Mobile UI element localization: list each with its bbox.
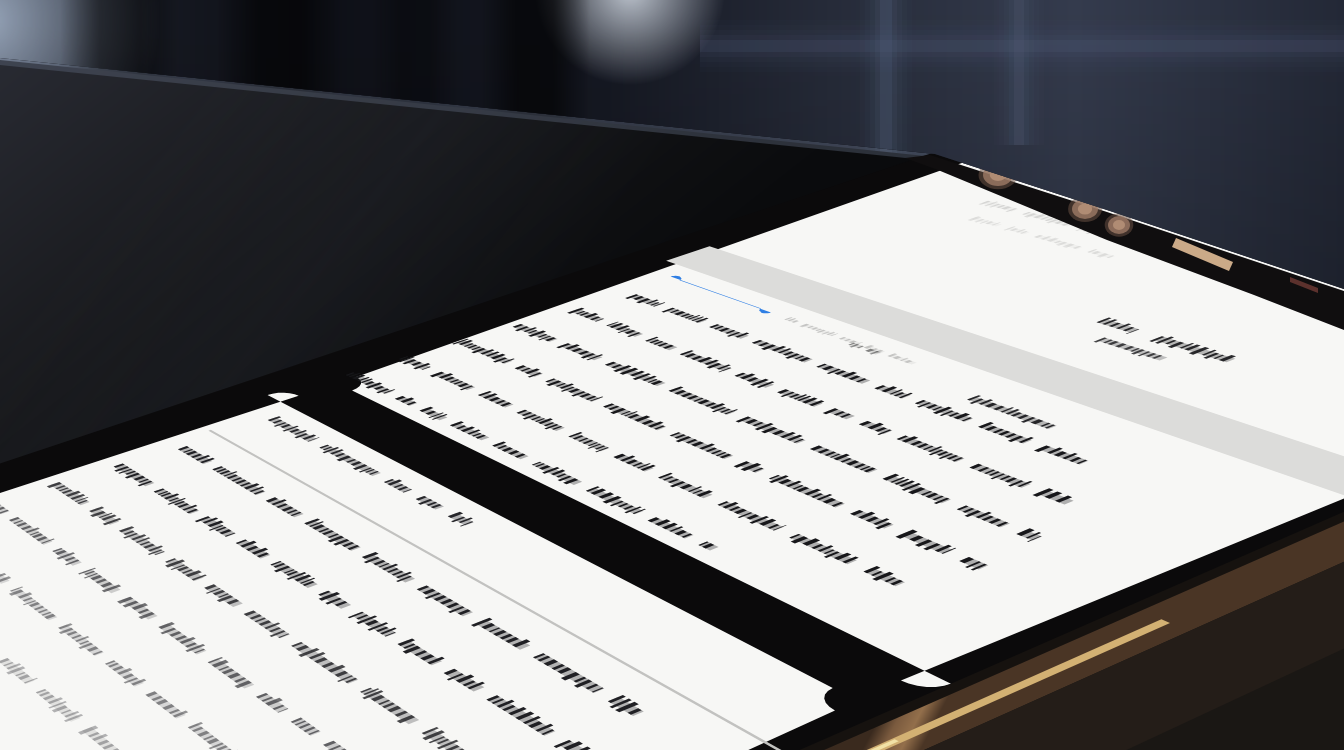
button[interactable]: Article card: [430, 200, 890, 380]
button[interactable]: Second article card: [60, 420, 520, 670]
